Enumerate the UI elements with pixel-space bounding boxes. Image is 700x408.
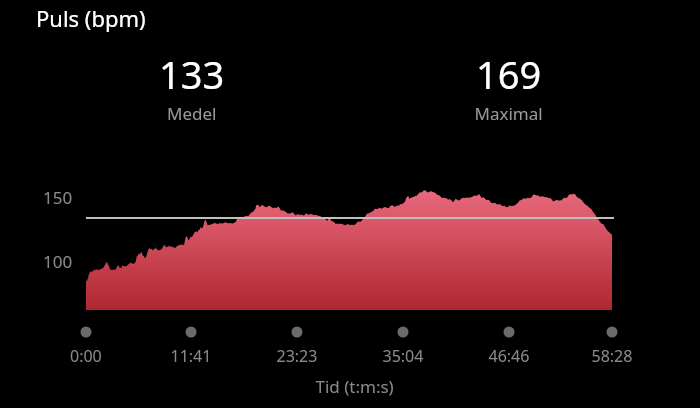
button[interactable]: Heart rate chart: [0, 0, 700, 408]
